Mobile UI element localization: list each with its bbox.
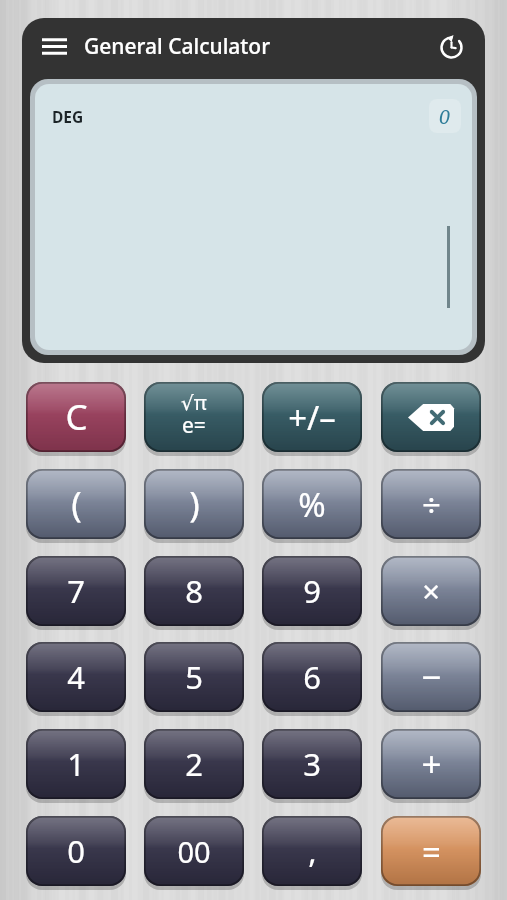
staticText: e= bbox=[182, 411, 206, 440]
staticText: × bbox=[422, 570, 440, 612]
staticText: 3 bbox=[303, 743, 321, 785]
staticText: ÷ bbox=[422, 482, 441, 527]
staticText: ) bbox=[189, 480, 200, 528]
button[interactable]: ) bbox=[144, 469, 244, 539]
staticText: − bbox=[421, 653, 442, 701]
staticText: ( bbox=[71, 480, 82, 528]
button[interactable]: 3 bbox=[262, 729, 362, 799]
staticText: +/– bbox=[288, 395, 336, 440]
staticText: , bbox=[308, 830, 317, 872]
button[interactable]: 00 bbox=[144, 816, 244, 886]
staticText: 0 bbox=[439, 103, 451, 130]
button[interactable]: % bbox=[262, 469, 362, 539]
button[interactable]: 7 bbox=[26, 556, 126, 626]
button[interactable]: 2 bbox=[144, 729, 244, 799]
button[interactable]: 9 bbox=[262, 556, 362, 626]
button[interactable]: DEG bbox=[35, 84, 472, 350]
staticText: = bbox=[422, 829, 441, 874]
button[interactable]: 4 bbox=[26, 642, 126, 712]
button[interactable]: × bbox=[381, 556, 481, 626]
button[interactable]: ( bbox=[26, 469, 126, 539]
staticText: √π bbox=[181, 389, 207, 416]
button[interactable]: ÷ bbox=[381, 469, 481, 539]
button[interactable]: , bbox=[262, 816, 362, 886]
staticText: % bbox=[298, 482, 326, 527]
staticText: 6 bbox=[303, 656, 321, 698]
button[interactable]: 6 bbox=[262, 642, 362, 712]
button[interactable]: + bbox=[381, 729, 481, 799]
staticText: DEG bbox=[52, 106, 84, 127]
button[interactable]: Constants bbox=[144, 382, 244, 452]
button[interactable]: 0 bbox=[26, 816, 126, 886]
staticText: 7 bbox=[67, 570, 85, 612]
button[interactable]: 1 bbox=[26, 729, 126, 799]
button[interactable]: +/– bbox=[262, 382, 362, 452]
staticText: General Calculator bbox=[84, 32, 271, 61]
button[interactable]: Menu bbox=[34, 26, 74, 66]
staticText: 2 bbox=[185, 743, 203, 785]
staticText: 8 bbox=[185, 570, 203, 612]
staticText: 4 bbox=[67, 656, 85, 698]
button[interactable]: History bbox=[431, 26, 471, 66]
staticText: 0 bbox=[67, 830, 85, 872]
button[interactable]: − bbox=[381, 642, 481, 712]
staticText: + bbox=[421, 740, 442, 788]
staticText: 5 bbox=[185, 656, 203, 698]
button[interactable]: 5 bbox=[144, 642, 244, 712]
button[interactable]: 8 bbox=[144, 556, 244, 626]
button[interactable]: = bbox=[381, 816, 481, 886]
button[interactable]: C bbox=[26, 382, 126, 452]
staticText: C bbox=[65, 393, 88, 441]
staticText: 9 bbox=[303, 570, 321, 612]
button[interactable]: Backspace bbox=[381, 382, 481, 452]
staticText: 00 bbox=[177, 832, 211, 871]
staticText: 1 bbox=[67, 743, 85, 785]
